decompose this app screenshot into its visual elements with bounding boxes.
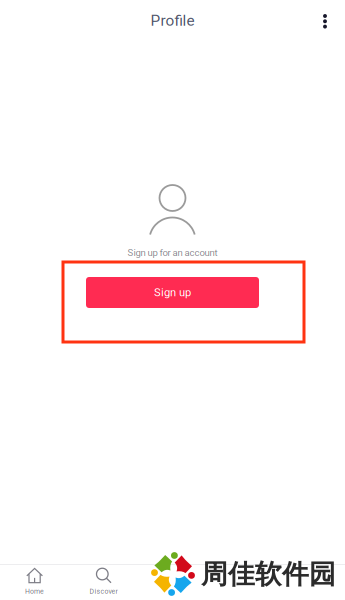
button[interactable]: Discover [69,566,138,597]
staticText: Sign up [154,286,191,299]
button[interactable]: Sign up [86,277,259,308]
staticText: Home [25,587,44,595]
staticText: Discover [89,587,117,595]
staticText: Profile [150,11,194,29]
button[interactable]: Home [0,566,69,597]
button[interactable]: More options [305,0,345,41]
staticText: 周佳软件园 [201,558,336,591]
staticText: Sign up for an account [127,247,217,258]
